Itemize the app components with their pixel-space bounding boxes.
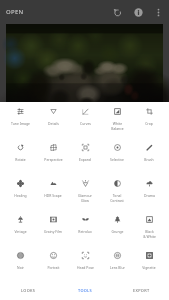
- staticText: TOOLS: [78, 288, 92, 293]
- staticText: Crop: [145, 121, 153, 126]
- button[interactable]: LOOKS: [0, 282, 57, 300]
- button[interactable]: Info: [128, 2, 149, 23]
- staticText: EXPORT: [133, 288, 150, 293]
- staticText: Details: [48, 121, 59, 126]
- staticText: Portrait: [47, 265, 60, 270]
- staticText: Retrolux: [78, 229, 92, 234]
- staticText: Tune Image: [11, 121, 30, 126]
- staticText: Brush: [144, 157, 154, 162]
- staticText: White Balance: [111, 121, 124, 131]
- button[interactable]: Noir: [4, 246, 37, 282]
- button[interactable]: Brush: [133, 138, 165, 174]
- button[interactable]: Expand: [69, 138, 101, 174]
- staticText: Noir: [17, 265, 24, 270]
- button[interactable]: Lens Blur: [101, 246, 133, 282]
- staticText: Head Pose: [77, 265, 94, 270]
- button[interactable]: OPEN: [0, 3, 30, 21]
- button[interactable]: Portrait: [37, 246, 69, 282]
- button[interactable]: Grainy Film: [37, 210, 69, 246]
- button[interactable]: Grunge: [101, 210, 133, 246]
- button[interactable]: Tune Image: [4, 102, 37, 138]
- staticText: Tonal Contrast: [110, 193, 124, 203]
- staticText: Curves: [80, 121, 91, 126]
- button[interactable]: Glamour Glow: [69, 174, 101, 210]
- staticText: Healing: [14, 193, 27, 198]
- staticText: Vignette: [142, 265, 156, 270]
- button[interactable]: HDR Scape: [37, 174, 69, 210]
- staticText: Rotate: [15, 157, 26, 162]
- button[interactable]: Selective: [101, 138, 133, 174]
- staticText: Glamour Glow: [78, 193, 92, 203]
- button[interactable]: White Balance: [101, 102, 133, 138]
- button[interactable]: Drama: [133, 174, 165, 210]
- staticText: OPEN: [6, 8, 24, 16]
- button[interactable]: Vintage: [4, 210, 37, 246]
- staticText: Vintage: [14, 229, 27, 234]
- button[interactable]: Black & White: [133, 210, 165, 246]
- button[interactable]: Rotate: [4, 138, 37, 174]
- staticText: Drama: [144, 193, 155, 198]
- staticText: Grainy Film: [44, 229, 62, 234]
- staticText: LOOKS: [21, 288, 36, 293]
- button[interactable]: Vignette: [133, 246, 165, 282]
- staticText: HDR Scape: [44, 193, 62, 198]
- staticText: Selective: [110, 157, 124, 162]
- button[interactable]: Details: [37, 102, 69, 138]
- button[interactable]: More options: [149, 3, 167, 21]
- button[interactable]: Retrolux: [69, 210, 101, 246]
- button[interactable]: EXPORT: [113, 282, 169, 300]
- button[interactable]: TOOLS: [57, 282, 113, 300]
- button[interactable]: Crop: [133, 102, 165, 138]
- button[interactable]: Tonal Contrast: [101, 174, 133, 210]
- staticText: Expand: [79, 157, 91, 162]
- button[interactable]: Perspective: [37, 138, 69, 174]
- button[interactable]: Curves: [69, 102, 101, 138]
- staticText: Perspective: [44, 157, 63, 162]
- staticText: Lens Blur: [110, 265, 125, 270]
- button[interactable]: Undo: [107, 2, 128, 23]
- staticText: Black & White: [143, 229, 156, 239]
- staticText: Grunge: [111, 229, 124, 234]
- button[interactable]: Head Pose: [69, 246, 101, 282]
- button[interactable]: Healing: [4, 174, 37, 210]
